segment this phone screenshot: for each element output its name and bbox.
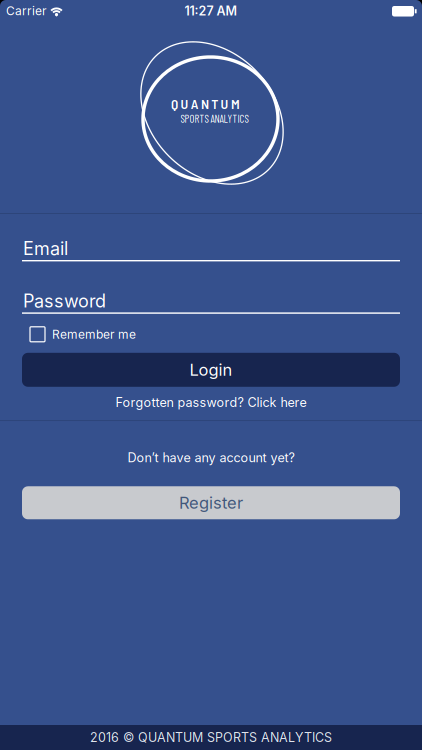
staticText: T	[211, 95, 218, 112]
staticText: M	[231, 95, 240, 112]
staticText: Password	[23, 290, 106, 312]
staticText: 11:27 AM	[184, 3, 237, 18]
staticText: SPORTS ANALYTICS	[180, 112, 248, 125]
staticText: Don’t have any account yet?	[127, 450, 294, 465]
staticText: A	[191, 95, 199, 112]
staticText: Carrier	[6, 4, 47, 18]
button[interactable]: Register	[22, 486, 400, 519]
staticText: U	[180, 95, 188, 112]
staticText: 2016 © QUANTUM SPORTS ANALYTICS	[90, 730, 332, 745]
button[interactable]: Email	[0, 240, 422, 261]
button[interactable]: Forgotten password? Click here	[115, 395, 306, 410]
staticText: Remember me	[52, 327, 136, 341]
staticText: Q	[171, 95, 178, 112]
button[interactable]: Login	[22, 353, 400, 387]
staticText: Email	[23, 238, 68, 259]
staticText: Register	[179, 493, 243, 513]
button[interactable]: Remember me	[0, 327, 422, 342]
staticText: Login	[189, 360, 232, 380]
staticText: U	[221, 95, 229, 112]
button[interactable]: Password	[0, 292, 422, 314]
staticText: Forgotten password? Click here	[115, 395, 306, 410]
staticText: N	[201, 95, 209, 112]
